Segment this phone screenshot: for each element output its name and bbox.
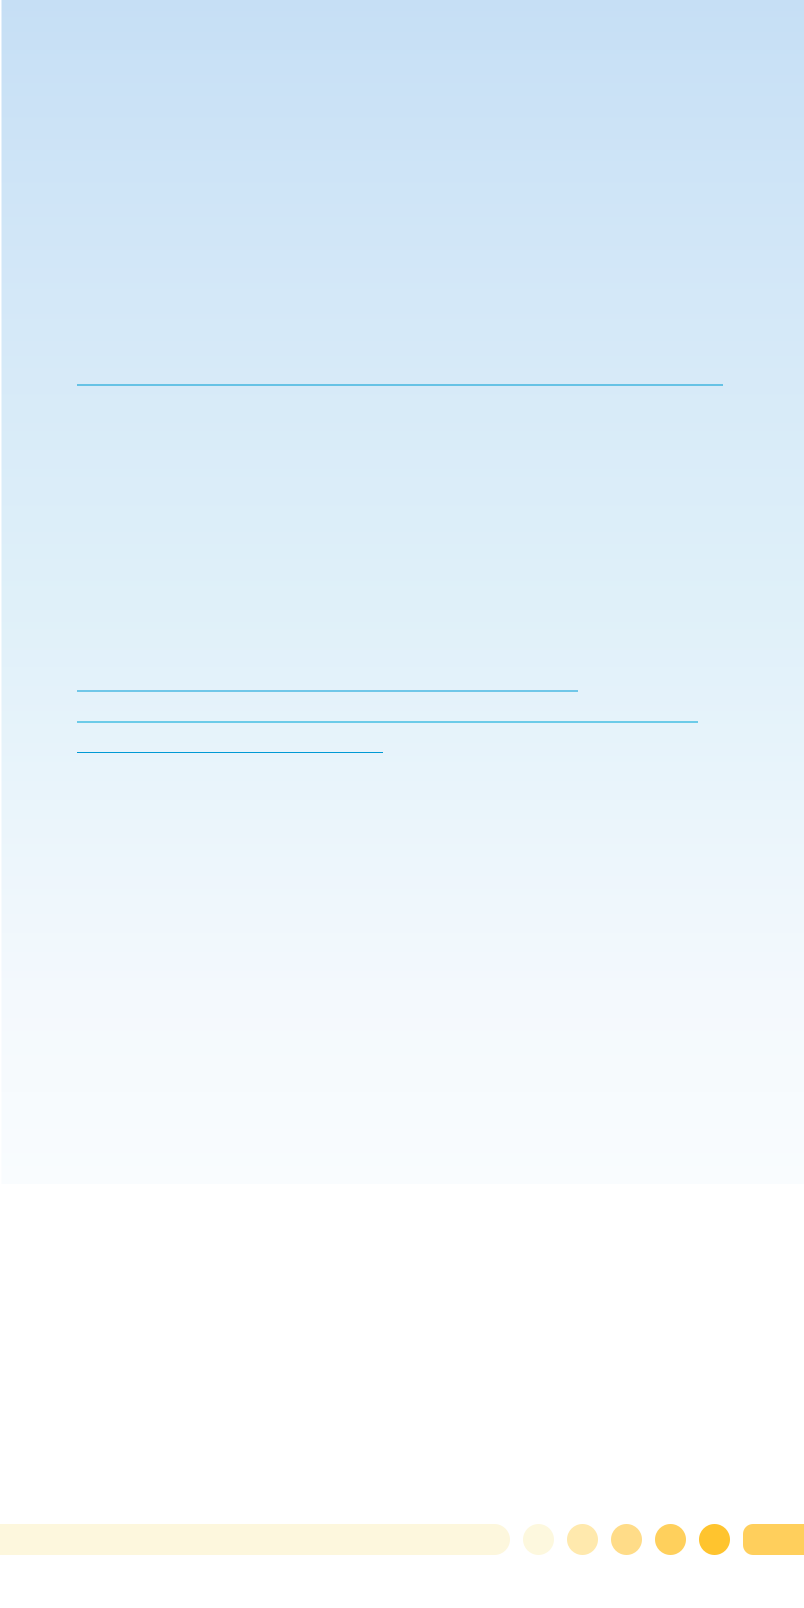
button[interactable]: Light — [611, 1524, 642, 1555]
button[interactable]: Bold — [699, 1524, 730, 1555]
button[interactable]: Lightest — [523, 1524, 554, 1555]
button[interactable]: More shades — [743, 1524, 804, 1555]
button[interactable]: Medium — [655, 1524, 686, 1555]
button[interactable]: Lighter — [567, 1524, 598, 1555]
